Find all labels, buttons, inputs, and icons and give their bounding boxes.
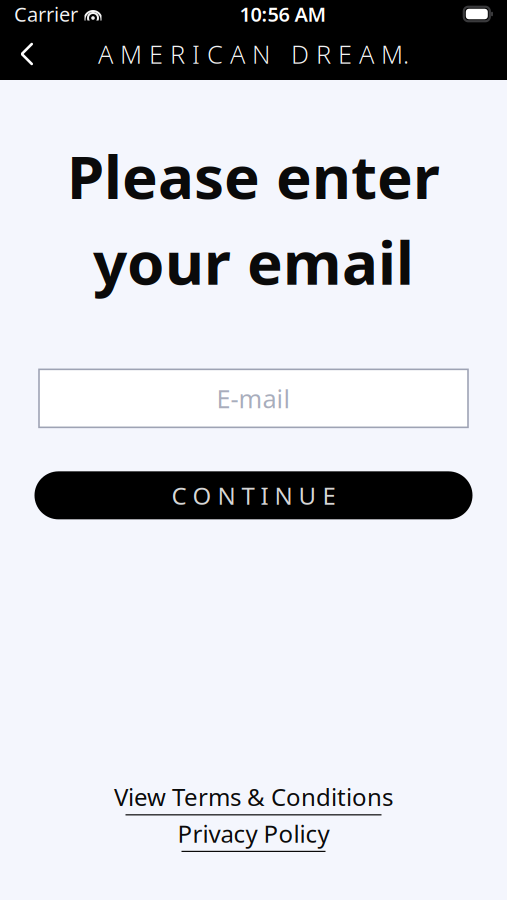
- button[interactable]: View Terms & Conditions: [114, 781, 393, 815]
- staticText: View Terms & Conditions: [114, 781, 393, 813]
- staticText: Privacy Policy: [177, 817, 329, 849]
- staticText: Please enter: [67, 136, 440, 216]
- button[interactable]: Privacy Policy: [177, 817, 329, 852]
- staticText: Carrier: [14, 1, 78, 27]
- staticText: your email: [93, 222, 414, 301]
- staticText: A M E R I C A N D R E A M.: [98, 37, 409, 71]
- staticText: E-mail: [216, 381, 290, 415]
- staticText: 10:56 AM: [239, 1, 326, 27]
- button[interactable]: E-mail: [39, 369, 468, 427]
- button[interactable]: C O N T I N U E: [34, 471, 472, 519]
- staticText: C O N T I N U E: [171, 479, 335, 511]
- button[interactable]: Back: [0, 28, 54, 80]
